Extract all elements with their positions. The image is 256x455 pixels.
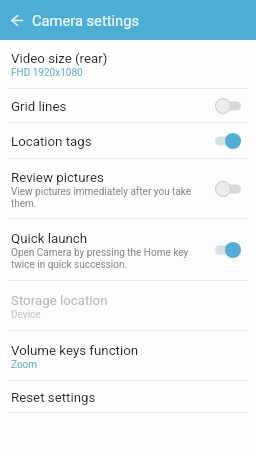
staticText: View pictures immediately after you take…: [11, 186, 211, 209]
button[interactable]: Quick launch: [211, 235, 245, 265]
button[interactable]: Location tags: [211, 126, 245, 156]
staticText: FHD 1920x1080: [11, 67, 83, 79]
staticText: Reset settings: [11, 390, 96, 406]
staticText: Camera settings: [32, 12, 140, 29]
staticText: Location tags: [11, 134, 92, 150]
staticText: Device: [11, 309, 41, 321]
staticText: Quick launch: [11, 231, 88, 247]
staticText: Storage location: [11, 293, 108, 309]
button[interactable]: Location tags: [0, 123, 256, 158]
button[interactable]: Quick launch: [0, 219, 256, 280]
button[interactable]: Back: [0, 0, 32, 40]
button[interactable]: Review pictures: [211, 174, 245, 204]
button[interactable]: Review pictures: [0, 159, 256, 218]
button[interactable]: Grid lines: [211, 91, 245, 121]
staticText: Video size (rear): [11, 51, 108, 67]
staticText: Grid lines: [11, 99, 67, 115]
staticText: Open Camera by pressing the Home key twi…: [11, 247, 211, 270]
staticText: Zoom: [11, 359, 38, 371]
staticText: Review pictures: [11, 170, 104, 186]
button[interactable]: Storage location: [0, 281, 256, 330]
button[interactable]: Video size (rear): [0, 40, 256, 88]
button[interactable]: Reset settings: [0, 381, 256, 412]
button[interactable]: Volume keys function: [0, 331, 256, 380]
button[interactable]: Grid lines: [0, 89, 256, 122]
staticText: Volume keys function: [11, 343, 139, 359]
